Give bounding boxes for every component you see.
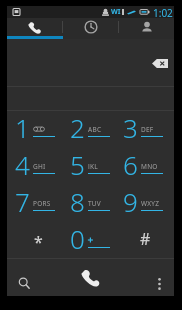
button[interactable]: Call log xyxy=(63,18,118,36)
staticText: 7 xyxy=(15,184,30,212)
button[interactable]: Call xyxy=(63,259,119,296)
button[interactable]: 8 xyxy=(62,184,118,221)
staticText: 1 xyxy=(15,110,30,138)
button[interactable]: 0 xyxy=(62,221,118,258)
staticText: 9 xyxy=(123,184,138,212)
staticText: DEF xyxy=(141,125,154,132)
button[interactable]: 7 xyxy=(7,184,62,221)
staticText: 3 xyxy=(123,110,138,138)
staticText: WI xyxy=(111,7,121,17)
staticText: 4 xyxy=(15,147,30,175)
staticText: TUV xyxy=(88,199,102,206)
staticText: WXYZ xyxy=(141,199,160,206)
button[interactable]: More options xyxy=(142,259,174,296)
button[interactable]: # xyxy=(118,221,174,258)
button[interactable]: Contacts xyxy=(119,18,174,36)
staticText: 0 xyxy=(70,221,85,249)
staticText: GHI xyxy=(33,162,46,169)
staticText: 6 xyxy=(123,147,138,175)
staticText: ABC xyxy=(88,125,102,132)
staticText: 2 xyxy=(70,110,85,138)
staticText: # xyxy=(140,228,151,250)
button[interactable]: 4 xyxy=(7,147,62,184)
button[interactable]: Dialer xyxy=(7,18,62,36)
staticText: 8 xyxy=(70,184,85,212)
button[interactable]: 2 xyxy=(62,111,118,147)
button[interactable]: * xyxy=(7,221,62,258)
staticText: * xyxy=(34,231,43,253)
button[interactable]: 6 xyxy=(118,147,174,184)
button[interactable]: 5 xyxy=(62,147,118,184)
staticText: 5 xyxy=(70,147,85,175)
button[interactable]: 1 xyxy=(7,111,62,147)
staticText: JKL xyxy=(88,162,98,169)
staticText: 1:02 xyxy=(153,6,173,18)
staticText: MNO xyxy=(141,162,158,169)
button[interactable]: 3 xyxy=(118,111,174,147)
button[interactable]: 9 xyxy=(118,184,174,221)
button[interactable]: Search xyxy=(7,259,41,296)
button[interactable]: Backspace xyxy=(150,56,170,70)
staticText: PQRS xyxy=(33,199,51,206)
